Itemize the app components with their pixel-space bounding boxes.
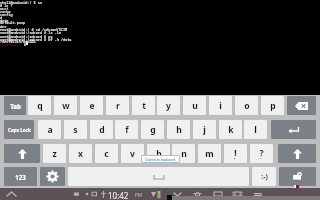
staticText: 10:42 — [108, 190, 129, 200]
button[interactable]: g — [141, 120, 164, 139]
staticText: b — [156, 148, 162, 160]
staticText: q — [37, 100, 43, 112]
staticText: root@andro — [0, 42, 21, 47]
button[interactable]: f — [115, 120, 138, 139]
staticText: Caps Lock — [8, 127, 31, 133]
staticText: u — [192, 100, 198, 112]
staticText: data — [0, 18, 9, 23]
staticText: l — [254, 124, 257, 136]
button[interactable]: h — [167, 120, 190, 139]
staticText: x — [78, 148, 83, 160]
button[interactable]: Settings — [40, 167, 65, 186]
staticText: r — [116, 100, 120, 112]
button[interactable]: 123 — [4, 167, 37, 186]
staticText: 123 — [15, 173, 26, 181]
staticText: j — [203, 124, 206, 136]
staticText: a — [47, 124, 53, 136]
staticText: . — [260, 154, 262, 161]
staticText: f — [125, 124, 129, 136]
staticText: # — [24, 42, 29, 47]
staticText: e — [89, 100, 95, 112]
button[interactable]: o — [235, 96, 258, 115]
button[interactable]: b — [147, 144, 170, 163]
staticText: root@android:/sdcard # df -h /data — [0, 37, 72, 42]
staticText: root@android:/sdcard # ls -la — [0, 30, 61, 35]
button[interactable]: Home — [190, 189, 204, 199]
staticText: root@android:/sdcard # ps — [0, 34, 53, 39]
button[interactable]: ! — [224, 144, 247, 163]
button[interactable]: p — [261, 96, 284, 115]
staticText: z — [52, 148, 57, 160]
staticText: d — [0, 15, 3, 20]
staticText: o — [244, 100, 250, 112]
button[interactable]: v — [121, 144, 144, 163]
button[interactable]: Recents — [213, 189, 223, 199]
button[interactable]: Shift — [4, 144, 40, 163]
staticText: config — [0, 12, 13, 17]
staticText: n — [181, 148, 187, 160]
staticText: Copied to clipboard — [145, 157, 176, 161]
button[interactable]: z — [43, 144, 66, 163]
staticText: s — [73, 124, 78, 136]
staticText: default.prop — [0, 20, 26, 25]
staticText: shell@android:/ $ su — [0, 0, 42, 5]
button[interactable]: i — [209, 96, 232, 115]
staticText: m — [205, 148, 214, 160]
staticText: ! — [234, 147, 237, 159]
button[interactable]: r — [106, 96, 129, 115]
button[interactable]: Back — [171, 189, 183, 199]
staticText: # ls / — [0, 3, 13, 8]
button[interactable]: m — [198, 144, 221, 163]
staticText: , — [234, 154, 236, 161]
button[interactable]: Backspace — [287, 96, 316, 115]
button[interactable]: u — [183, 96, 206, 115]
button[interactable]: s — [64, 120, 87, 139]
staticText: :-) — [261, 172, 268, 182]
staticText: h — [176, 124, 182, 136]
button[interactable]: Split screen — [231, 189, 243, 199]
staticText: p — [270, 100, 276, 112]
staticText: y — [166, 100, 171, 112]
button[interactable]: d — [90, 120, 113, 139]
staticText: i — [219, 100, 222, 112]
button[interactable]: w — [54, 96, 77, 115]
button[interactable]: c — [95, 144, 118, 163]
staticText: root@android:/ # cd /sdcard/DCIM — [0, 27, 68, 32]
staticText: dev — [0, 24, 7, 29]
staticText: v — [130, 148, 135, 160]
button[interactable]: y — [157, 96, 180, 115]
button[interactable]: x — [69, 144, 92, 163]
staticText: t — [142, 100, 146, 112]
button[interactable]: Clipboard — [279, 167, 316, 186]
button[interactable]: a — [38, 120, 61, 139]
button[interactable]: Hide keyboard — [2, 188, 20, 200]
staticText: d — [99, 124, 105, 136]
button[interactable]: n — [172, 144, 195, 163]
button[interactable]: t — [132, 96, 155, 115]
button[interactable]: Shift — [278, 144, 316, 163]
button[interactable]: Enter — [271, 120, 316, 139]
button[interactable]: Menu — [251, 189, 264, 199]
button[interactable]: l — [244, 120, 267, 139]
staticText: /dev/block/mmcblk — [0, 39, 36, 44]
staticText: acct — [0, 6, 9, 11]
button[interactable]: e — [80, 96, 103, 115]
staticText: c — [104, 148, 109, 160]
staticText: cache — [0, 9, 11, 14]
button[interactable]: Caps Lock — [4, 120, 34, 139]
staticText: g — [150, 124, 156, 136]
button[interactable]: :-) — [252, 167, 276, 186]
button[interactable]: k — [219, 120, 242, 139]
button[interactable]: ? — [250, 144, 273, 163]
staticText: Tab — [10, 102, 21, 110]
button[interactable]: j — [193, 120, 216, 139]
staticText: k — [228, 124, 234, 136]
button[interactable]: q — [28, 96, 51, 115]
button[interactable]: Space — [68, 167, 249, 186]
staticText: PM — [135, 192, 142, 198]
staticText: w — [62, 100, 70, 112]
staticText: ? — [259, 147, 264, 159]
button[interactable]: Tab — [4, 96, 26, 115]
